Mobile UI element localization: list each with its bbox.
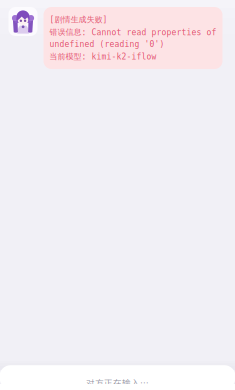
- button[interactable]: [剧情生成失败]: [43, 7, 222, 69]
- button[interactable]: 对方正在输入…: [0, 361, 235, 390]
- staticText: undefined (reading '0'): [49, 40, 164, 49]
- staticText: 对方正在输入…: [86, 376, 149, 389]
- staticText: [剧情生成失败]: [49, 14, 107, 25]
- staticText: 错误信息: Cannot read properties of: [49, 27, 216, 37]
- staticText: 当前模型: kimi-k2-iflow: [49, 51, 156, 62]
- button[interactable]: 角色头像: [8, 7, 37, 36]
